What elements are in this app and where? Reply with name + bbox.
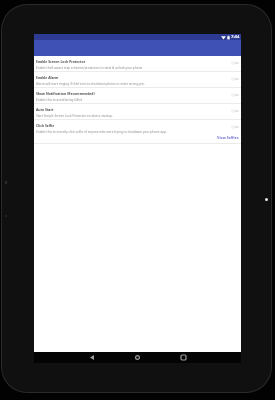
button[interactable]: Enable Alarm xyxy=(34,72,241,88)
button[interactable]: View Selfies xyxy=(216,134,240,141)
staticText: Auto Start xyxy=(36,107,54,112)
staticText: Click Selfie xyxy=(36,123,55,128)
staticText: View Selfies xyxy=(217,135,239,140)
staticText: Enable Screen Lock Protector xyxy=(36,59,86,64)
button[interactable]: Auto Start xyxy=(34,104,241,120)
staticText: Start Simple Screen Lock Protector on de… xyxy=(36,114,113,118)
button[interactable]: Toggle xyxy=(231,107,240,114)
button[interactable]: Back xyxy=(86,352,97,363)
button[interactable]: Show Notification (Recommended) xyxy=(34,88,241,104)
button[interactable]: Toggle xyxy=(231,91,240,98)
button[interactable]: Toggle xyxy=(231,59,240,66)
button[interactable]: Recents xyxy=(178,352,189,363)
staticText: Show Notification (Recommended) xyxy=(36,91,95,96)
button[interactable]: Home xyxy=(132,352,143,363)
button[interactable]: Toggle xyxy=(231,75,240,82)
staticText: Enable this to avoid being killed xyxy=(36,98,82,102)
button[interactable]: Enable Screen Lock Protector xyxy=(34,56,241,72)
button[interactable]: Click Selfie xyxy=(34,120,241,144)
staticText: Alarm will start ringing if thief tries … xyxy=(36,82,145,86)
button[interactable]: Toggle xyxy=(231,123,240,130)
staticText: Enable theft aware trap schemes/protecto… xyxy=(36,66,143,70)
staticText: Enable Alarm xyxy=(36,75,59,80)
staticText: Enable this to secretly click selfie of … xyxy=(36,130,167,134)
staticText: 7:44 xyxy=(231,34,240,40)
